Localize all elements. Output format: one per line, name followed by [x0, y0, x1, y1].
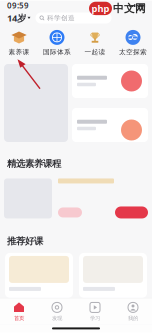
button[interactable]	[3, 178, 149, 218]
staticText: 推荐好课	[7, 235, 43, 247]
staticText: 14岁	[7, 12, 26, 24]
button[interactable]: 14岁	[6, 12, 31, 24]
button[interactable]	[72, 108, 148, 142]
button[interactable]: 学习	[76, 301, 114, 321]
button[interactable]: 首页	[0, 301, 38, 321]
button[interactable]: 一起读	[76, 30, 114, 56]
staticText: 学习	[90, 315, 100, 321]
button[interactable]: 我的	[114, 301, 152, 321]
staticText: 精选素养课程	[7, 158, 61, 169]
button[interactable]: 国际体系	[38, 30, 76, 56]
staticText: 中文网	[113, 2, 146, 15]
button[interactable]	[5, 253, 73, 298]
staticText: 科学创造	[47, 14, 75, 22]
button[interactable]: 太空探索	[114, 30, 152, 56]
button[interactable]	[79, 253, 147, 298]
button[interactable]: 发现	[38, 301, 76, 321]
button[interactable]	[72, 64, 148, 98]
staticText: 一起读	[84, 48, 105, 56]
staticText: php	[91, 2, 109, 15]
button[interactable]: 素养课	[0, 30, 38, 56]
staticText: 首页	[14, 315, 24, 321]
staticText: 我的	[128, 315, 138, 321]
staticText: 国际体系	[43, 48, 71, 56]
staticText: 09:59	[7, 0, 29, 11]
button[interactable]: 科学创造	[35, 12, 111, 23]
staticText: 太空探索	[119, 48, 147, 56]
staticText: 素养课	[8, 48, 29, 56]
staticText: 发现	[52, 315, 62, 321]
